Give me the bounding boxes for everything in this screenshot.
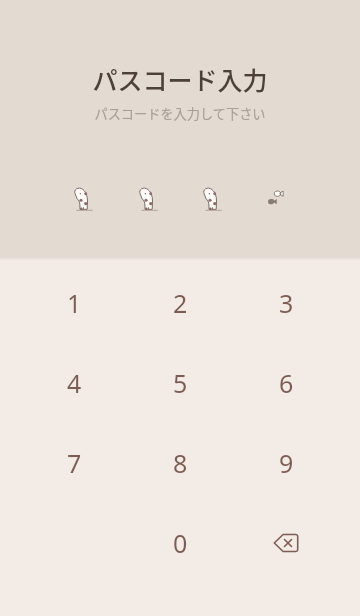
button[interactable]: 6	[233, 343, 339, 423]
button[interactable]: 4	[21, 343, 127, 423]
staticText: 5	[173, 366, 188, 400]
button[interactable]: 7	[21, 423, 127, 503]
staticText: 4	[67, 366, 82, 400]
button[interactable]: 2	[127, 263, 233, 343]
button[interactable]: 9	[233, 423, 339, 503]
staticText: パスコード入力	[92, 61, 268, 97]
staticText: 9	[279, 446, 294, 480]
button[interactable]: 0	[127, 503, 233, 583]
staticText: 1	[67, 286, 82, 320]
button[interactable]: 5	[127, 343, 233, 423]
staticText: 6	[279, 366, 294, 400]
staticText: 7	[67, 446, 82, 480]
staticText: 3	[279, 286, 294, 320]
staticText: パスコードを入力して下さい	[94, 104, 266, 123]
button[interactable]: 8	[127, 423, 233, 503]
button[interactable]: 1	[21, 263, 127, 343]
staticText: 8	[173, 446, 188, 480]
button[interactable]: Delete	[233, 503, 339, 583]
staticText: 0	[173, 526, 188, 560]
staticText: 2	[173, 286, 188, 320]
button[interactable]: 3	[233, 263, 339, 343]
